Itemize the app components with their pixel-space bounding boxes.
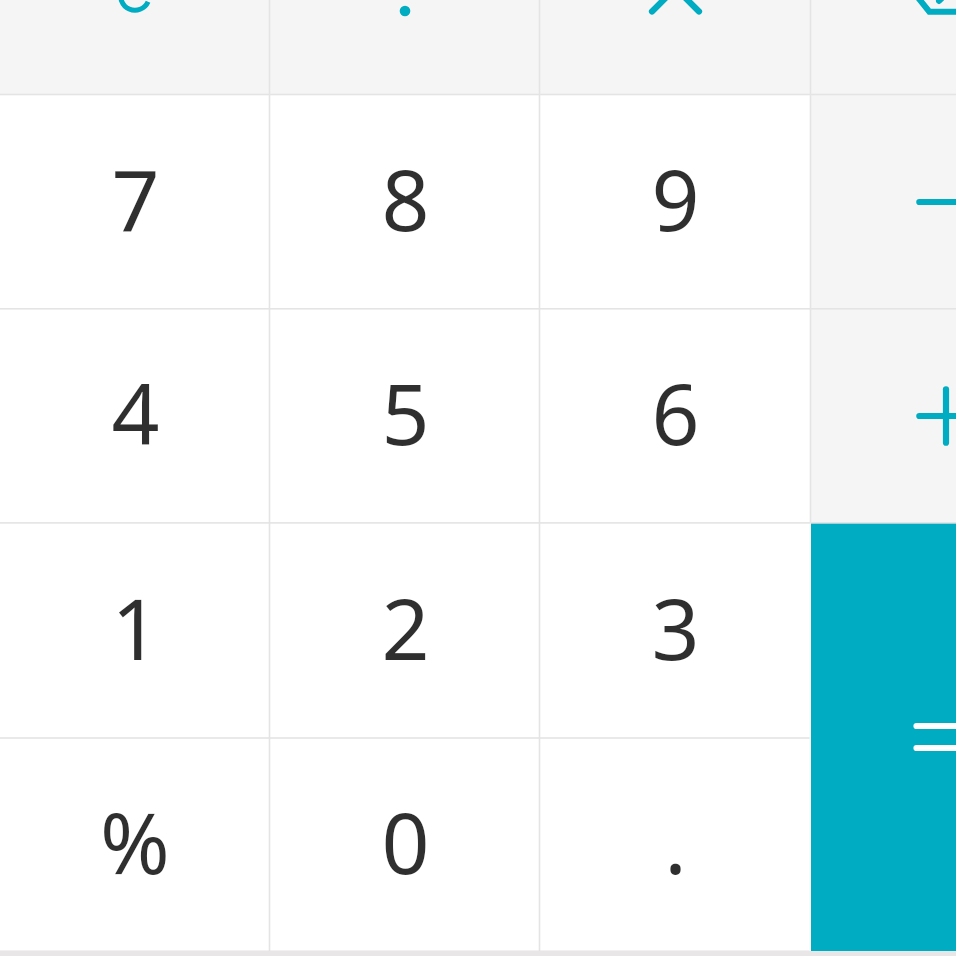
button[interactable]: Backspace [811,0,956,95]
button[interactable]: . [540,738,811,951]
staticText: 0 [381,784,430,898]
staticText: . [664,784,687,898]
button[interactable]: 7 [0,95,270,309]
button[interactable]: 6 [540,309,811,523]
button[interactable]: % [0,738,270,951]
button[interactable]: 4 [0,309,270,523]
staticText: 6 [651,355,700,469]
button[interactable]: Divide [270,0,540,95]
button[interactable]: 0 [270,738,540,951]
button[interactable]: 9 [540,95,811,309]
button[interactable]: Multiply [540,0,811,95]
button[interactable]: 3 [540,523,811,738]
staticText: % [100,784,170,898]
button[interactable]: Minus [811,95,956,309]
button[interactable]: 5 [270,309,540,523]
staticText: 5 [381,355,430,469]
staticText: 4 [111,355,160,469]
button[interactable]: Clear [0,0,270,95]
button[interactable]: Plus [811,309,956,523]
staticText: 2 [381,570,430,684]
staticText: 1 [111,570,160,684]
staticText: 8 [381,141,430,255]
button[interactable]: 1 [0,523,270,738]
button[interactable]: 2 [270,523,540,738]
staticText: 3 [651,570,700,684]
button[interactable]: Equals [811,523,956,951]
button[interactable]: 8 [270,95,540,309]
staticText: 9 [651,141,700,255]
staticText: 7 [111,141,160,255]
